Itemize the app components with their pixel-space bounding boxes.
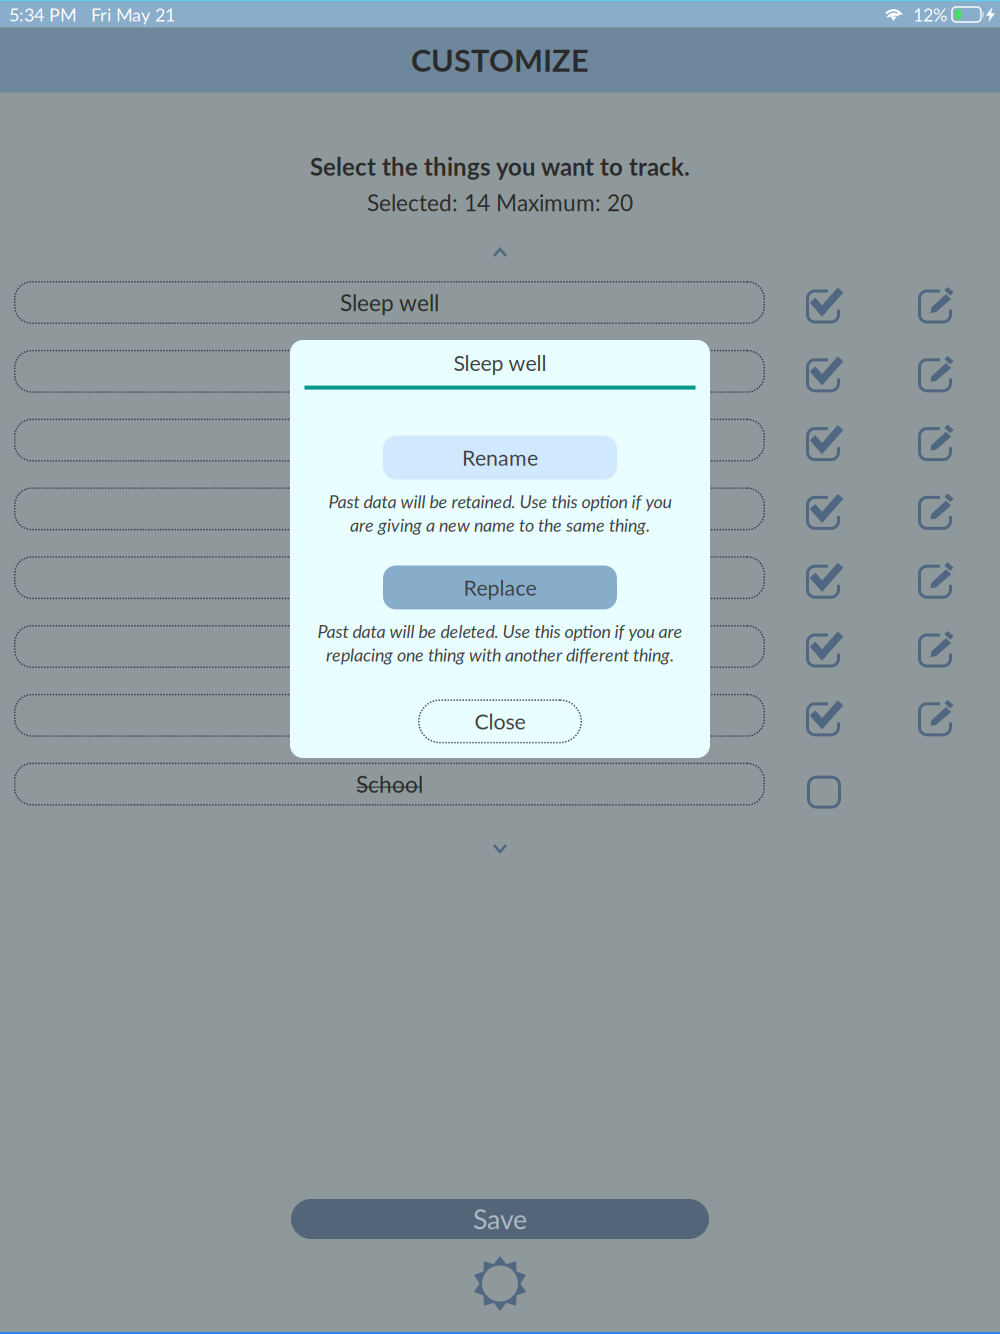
button[interactable]: Scroll down bbox=[474, 832, 526, 865]
button[interactable]: Selected bbox=[799, 625, 843, 668]
button[interactable]: Edit bbox=[911, 281, 955, 324]
staticText: 5:34 PM bbox=[9, 4, 77, 25]
staticText: Rename bbox=[462, 445, 538, 470]
button[interactable] bbox=[14, 625, 765, 668]
staticText: Sleep well bbox=[340, 289, 439, 316]
staticText: School bbox=[356, 770, 423, 798]
button[interactable]: Edit bbox=[911, 625, 955, 668]
staticText: Replace bbox=[463, 575, 536, 600]
button[interactable]: Edit bbox=[911, 556, 955, 599]
button[interactable]: Scroll up bbox=[474, 236, 526, 269]
button[interactable] bbox=[14, 350, 765, 393]
staticText: Select the things you want to track. bbox=[310, 152, 690, 181]
button[interactable]: Rename bbox=[383, 436, 617, 480]
button[interactable]: Edit bbox=[911, 487, 955, 530]
button[interactable]: Edit bbox=[911, 694, 955, 737]
button[interactable]: Edit bbox=[911, 350, 955, 393]
button[interactable] bbox=[14, 694, 765, 737]
staticText: Sleep well bbox=[453, 350, 546, 376]
staticText: 12% bbox=[913, 4, 947, 25]
button[interactable]: Not selected bbox=[799, 763, 843, 806]
button[interactable]: Selected bbox=[799, 556, 843, 599]
button[interactable]: Close bbox=[418, 699, 582, 743]
button[interactable]: Replace bbox=[383, 565, 617, 609]
button[interactable]: Selected bbox=[799, 419, 843, 462]
button[interactable]: Save bbox=[291, 1199, 709, 1239]
staticText: Fri May 21 bbox=[91, 4, 175, 25]
button[interactable] bbox=[14, 487, 765, 530]
button[interactable] bbox=[14, 556, 765, 599]
staticText: Save bbox=[473, 1203, 527, 1235]
staticText: Close bbox=[474, 709, 525, 734]
button[interactable]: Settings bbox=[467, 1251, 532, 1316]
button[interactable]: School bbox=[14, 763, 765, 806]
button[interactable]: Selected bbox=[799, 281, 843, 324]
staticText: Past data will be retained. Use this opt… bbox=[328, 491, 671, 512]
staticText: CUSTOMIZE bbox=[411, 42, 589, 78]
staticText: Past data will be deleted. Use this opti… bbox=[317, 620, 682, 642]
button[interactable]: Selected bbox=[799, 694, 843, 737]
button[interactable]: Selected bbox=[799, 487, 843, 530]
staticText: replacing one thing with another differe… bbox=[326, 644, 674, 665]
button[interactable]: Edit bbox=[911, 419, 955, 462]
button[interactable]: Selected bbox=[799, 350, 843, 393]
button[interactable] bbox=[14, 419, 765, 462]
button[interactable]: Sleep well bbox=[14, 281, 765, 324]
staticText: are giving a new name to the same thing. bbox=[350, 514, 650, 535]
staticText: Selected: 14 Maximum: 20 bbox=[367, 189, 633, 216]
